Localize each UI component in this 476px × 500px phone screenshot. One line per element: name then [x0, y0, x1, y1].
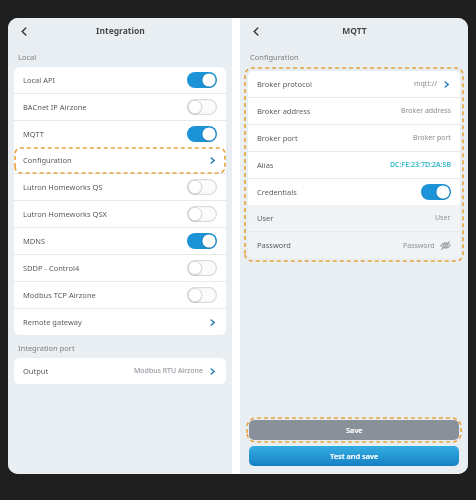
staticText: User — [257, 213, 274, 223]
button[interactable]: Modbus TCP Airzone — [14, 282, 226, 309]
button[interactable]: Password — [248, 232, 460, 258]
button[interactable]: MDNS — [14, 228, 226, 255]
staticText: Remote gateway — [23, 317, 82, 327]
staticText: Modbus TCP Airzone — [23, 290, 96, 300]
button[interactable]: Back — [247, 22, 265, 40]
button[interactable]: Toggle off — [187, 287, 217, 303]
staticText: Alias — [257, 160, 274, 170]
button[interactable]: SDDP - Control4 — [14, 255, 226, 282]
staticText: User — [435, 213, 451, 223]
staticText: Local API — [23, 75, 56, 85]
button[interactable]: Toggle off — [187, 206, 217, 222]
button[interactable]: Toggle off — [187, 99, 217, 115]
button[interactable]: Output — [14, 358, 226, 384]
staticText: mqtt:// — [414, 79, 437, 89]
button[interactable]: User — [248, 205, 460, 232]
staticText: Lutron Homeworks QSX — [23, 209, 107, 219]
staticText: Modbus RTU Airzone — [134, 366, 203, 376]
button[interactable]: Alias — [248, 152, 460, 179]
button[interactable]: Toggle on — [187, 233, 217, 249]
staticText: MDNS — [23, 236, 46, 246]
staticText: Configuration — [250, 52, 299, 62]
staticText: Broker address — [257, 106, 311, 116]
staticText: MQTT — [342, 25, 367, 37]
button[interactable]: Toggle on — [187, 72, 217, 88]
button[interactable]: Lutron Homeworks QS — [14, 174, 226, 201]
staticText: Configuration — [23, 155, 72, 165]
button[interactable]: Show password — [440, 240, 451, 251]
staticText: Broker address — [401, 106, 451, 116]
button[interactable]: Test and save — [249, 446, 459, 466]
staticText: MQTT — [23, 129, 44, 139]
button[interactable]: Configuration — [14, 147, 226, 174]
staticText: Password — [403, 241, 435, 251]
button[interactable]: Remote gateway — [14, 309, 226, 335]
button[interactable]: MQTT — [14, 121, 226, 147]
button[interactable]: Save — [249, 420, 459, 440]
staticText: Test and save — [330, 451, 379, 461]
button[interactable]: Lutron Homeworks QSX — [14, 201, 226, 228]
staticText: Password — [257, 240, 291, 250]
button[interactable]: Broker port — [248, 125, 460, 152]
staticText: Lutron Homeworks QS — [23, 182, 103, 192]
button[interactable]: Back — [15, 22, 33, 40]
staticText: SDDP - Control4 — [23, 263, 80, 273]
button[interactable]: BACnet IP Airzone — [14, 94, 226, 121]
staticText: Save — [346, 425, 363, 435]
staticText: Integration port — [18, 343, 75, 353]
button[interactable]: Toggle off — [187, 260, 217, 276]
staticText: DC:FE:23:7D:2A:5B — [390, 160, 451, 170]
staticText: Output — [23, 366, 49, 376]
button[interactable]: Broker protocol — [248, 71, 460, 98]
button[interactable]: Toggle on — [421, 184, 451, 200]
staticText: BACnet IP Airzone — [23, 102, 87, 112]
staticText: Credentials — [257, 187, 297, 197]
button[interactable]: Credentials — [248, 179, 460, 205]
staticText: Broker port — [413, 133, 451, 143]
button[interactable]: Toggle off — [187, 179, 217, 195]
button[interactable]: Toggle on — [187, 126, 217, 142]
staticText: Integration — [96, 25, 145, 37]
button[interactable]: Local API — [14, 67, 226, 94]
staticText: Broker protocol — [257, 79, 313, 89]
button[interactable]: Broker address — [248, 98, 460, 125]
staticText: Broker port — [257, 133, 298, 143]
staticText: Local — [18, 52, 37, 62]
